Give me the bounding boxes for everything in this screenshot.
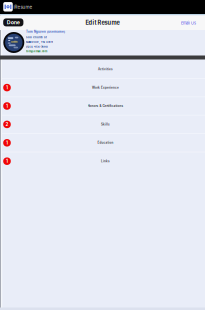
staticText: Education (97, 141, 113, 144)
staticText: 1 (6, 103, 8, 109)
staticText: Honors & Certifications (87, 104, 123, 108)
staticText: 1 (6, 140, 8, 146)
button[interactable]: Education (2, 134, 205, 152)
staticText: Work Experience (92, 86, 119, 89)
staticText: Skills (101, 123, 110, 126)
button[interactable]: Email Us (181, 21, 196, 26)
staticText: Edit Resume (85, 19, 119, 26)
staticText: (123) 456-7890 (26, 45, 48, 48)
button[interactable]: Done (3, 18, 23, 26)
staticText: 500 Church St (26, 36, 47, 39)
staticText: 1 (6, 158, 8, 164)
button[interactable]: Honors & Certifications (2, 97, 205, 115)
staticText: Links (101, 159, 110, 163)
staticText: Nashville, TN 37211 (26, 40, 53, 44)
button[interactable]: Work Experience (2, 78, 205, 97)
staticText: Email Us (181, 21, 196, 26)
staticText: Activities (98, 67, 113, 71)
staticText: tom@email.com (26, 50, 47, 53)
staticText: 1 (6, 85, 8, 90)
staticText: Tom Nguyen (username) (26, 30, 65, 34)
button[interactable]: Links (2, 152, 205, 170)
button[interactable]: Activities (2, 60, 205, 78)
staticText: 2 (5, 122, 8, 127)
staticText: Done (7, 19, 20, 26)
staticText: iResume (13, 4, 32, 10)
button[interactable]: Skills (2, 115, 205, 134)
